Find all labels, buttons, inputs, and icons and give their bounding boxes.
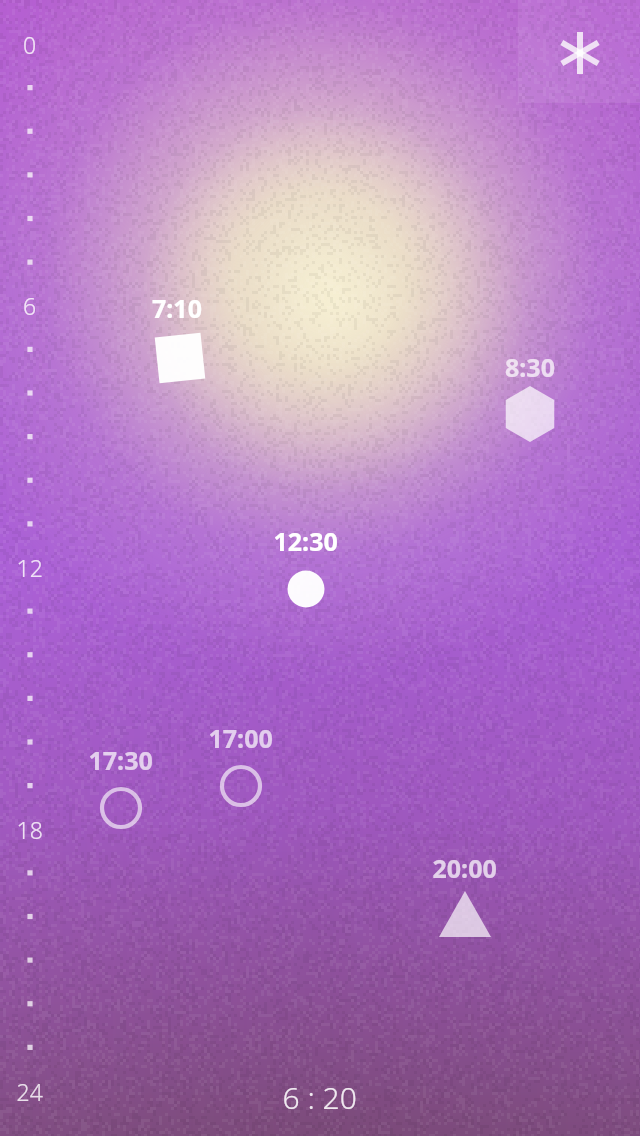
button[interactable]: Event 17:00 [195, 720, 290, 815]
button[interactable]: Current time 6:20 [260, 1075, 380, 1123]
button[interactable]: Event 7:10 [140, 290, 230, 390]
button[interactable]: Event 17:30 [75, 742, 170, 837]
button[interactable]: Event 8:30 [490, 350, 580, 450]
button[interactable]: Event 12:30 [260, 522, 360, 622]
button[interactable]: Event 20:00 [418, 850, 513, 945]
button[interactable]: Settings [518, 0, 640, 103]
